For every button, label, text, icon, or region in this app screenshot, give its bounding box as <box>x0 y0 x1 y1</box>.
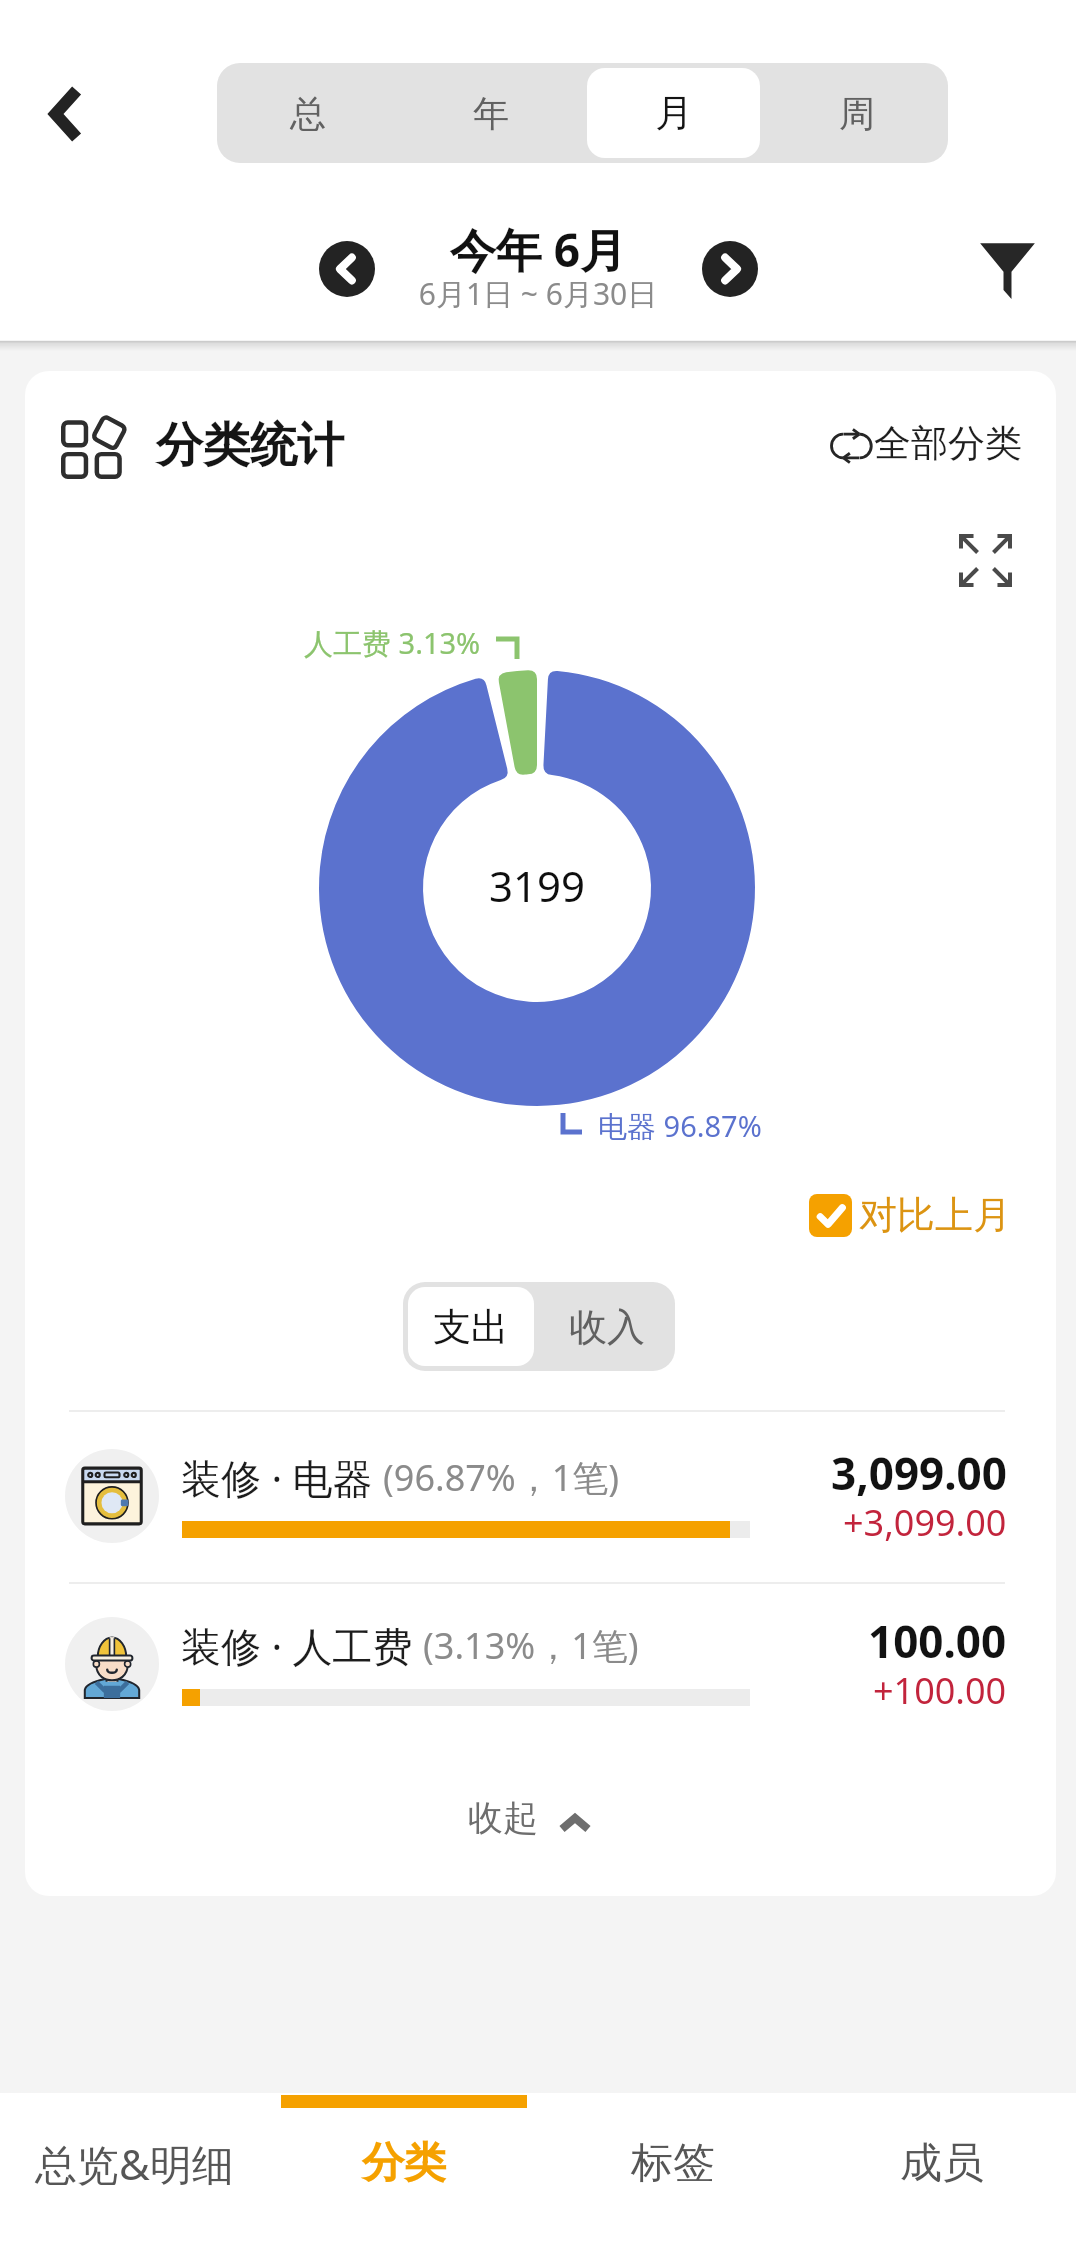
button[interactable]: 装修 · 电器 <box>25 1412 1056 1580</box>
staticText: 3199 <box>437 857 637 914</box>
staticText: 装修 · 人工费 <box>181 1618 413 1673</box>
staticText: (96.87%，1笔) <box>383 1453 620 1502</box>
staticText: 成员 <box>900 2137 984 2190</box>
button[interactable]: 收入 <box>544 1287 670 1366</box>
staticText: 收入 <box>569 1303 645 1351</box>
staticText: 对比上月 <box>859 1191 1011 1239</box>
button[interactable]: 对比上月 <box>809 1189 1011 1241</box>
button[interactable]: 成员 <box>807 2093 1076 2241</box>
staticText: 总览&明细 <box>35 2135 234 2192</box>
button[interactable]: 装修 · 人工费 <box>25 1580 1056 1748</box>
staticText: +3,099.00 <box>843 1498 1007 1547</box>
button[interactable]: 年 <box>404 68 577 158</box>
button[interactable]: 周 <box>770 68 943 158</box>
staticText: 人工费 3.13% <box>304 623 481 663</box>
button[interactable]: 标签 <box>538 2093 807 2241</box>
button[interactable]: Previous period <box>319 241 375 297</box>
staticText: 月 <box>655 89 693 137</box>
button[interactable]: Filter <box>963 226 1051 314</box>
staticText: 全部分类 <box>874 420 1022 467</box>
button[interactable]: 全部分类 <box>815 399 1031 487</box>
button[interactable]: Next period <box>702 241 758 297</box>
button[interactable]: 总览&明细 <box>0 2093 269 2241</box>
staticText: 收起 <box>468 1796 538 1840</box>
button[interactable] <box>45 401 141 497</box>
staticText: 3,099.00 <box>831 1443 1007 1503</box>
button[interactable]: Back <box>25 74 105 154</box>
staticText: 总 <box>290 91 326 136</box>
staticText: 100.00 <box>868 1611 1007 1671</box>
staticText: +100.00 <box>873 1666 1007 1715</box>
staticText: 年 <box>473 91 509 136</box>
staticText: 标签 <box>631 2137 715 2190</box>
staticText: 装修 · 电器 <box>181 1450 373 1505</box>
staticText: 今年 6月 <box>383 218 693 281</box>
staticText: 支出 <box>433 1303 509 1351</box>
staticText: 电器 96.87% <box>598 1106 762 1146</box>
button[interactable]: 分类 <box>269 2093 538 2241</box>
button[interactable]: 总 <box>222 68 394 158</box>
button[interactable]: 今年 6月 <box>383 218 693 314</box>
staticText: 6月1日 ~ 6月30日 <box>383 273 693 314</box>
button[interactable]: Fullscreen <box>943 518 1027 602</box>
button[interactable]: 支出 <box>408 1287 534 1366</box>
staticText: 分类统计 <box>156 416 344 475</box>
staticText: 分类 <box>362 2137 446 2190</box>
staticText: (3.13%，1笔) <box>423 1621 639 1670</box>
button[interactable]: 月 <box>587 68 760 158</box>
button[interactable]: 收起 <box>445 1771 645 1859</box>
staticText: 周 <box>839 91 875 136</box>
